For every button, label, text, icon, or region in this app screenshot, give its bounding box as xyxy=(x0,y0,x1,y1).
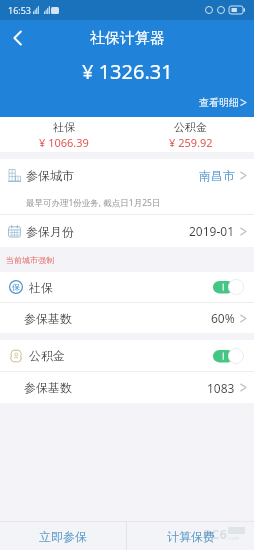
staticText: 参保基数 xyxy=(24,311,72,326)
button[interactable]: 计算保费 xyxy=(127,522,254,550)
button[interactable]: 查看明细 xyxy=(197,95,249,110)
staticText: 参保基数 xyxy=(24,380,72,395)
button[interactable]: 参保月份 xyxy=(0,215,254,247)
staticText: 立即参保 xyxy=(39,529,87,544)
staticText: 当前城市强制 xyxy=(6,255,54,265)
staticText: 2019-01 xyxy=(189,223,235,239)
staticText: 社保 xyxy=(53,120,75,134)
button[interactable]: 参保基数 xyxy=(0,372,254,403)
staticText: ¥ 1066.39 xyxy=(39,135,89,150)
staticText: 公积金 xyxy=(29,348,65,363)
staticText: 南昌市 xyxy=(199,168,235,183)
staticText: 60% xyxy=(211,310,235,326)
staticText: 计算保费 xyxy=(167,529,215,544)
staticText: 参保月份 xyxy=(26,224,74,239)
button[interactable]: 立即参保 xyxy=(0,522,126,550)
button[interactable]: 保 xyxy=(0,272,254,302)
staticText: 社保 xyxy=(29,280,53,295)
button[interactable]: Toggle xyxy=(213,279,244,295)
staticText: .com xyxy=(228,535,240,542)
staticText: 保 xyxy=(12,282,20,292)
button[interactable]: Back xyxy=(0,20,36,56)
staticText: 公积金 xyxy=(174,120,207,134)
staticText: ¥ 1326.31 xyxy=(82,58,173,85)
staticText: 参保城市 xyxy=(26,168,74,183)
button[interactable]: Toggle xyxy=(213,348,244,364)
staticText: 社保计算器 xyxy=(90,29,165,48)
staticText: 查看明细 xyxy=(199,96,239,109)
staticText: 最早可办理1份业务, 截点日1月25日 xyxy=(26,197,161,209)
button[interactable]: 参保基数 xyxy=(0,303,254,333)
button[interactable]: 社保 xyxy=(0,117,127,152)
staticText: PC6 xyxy=(203,525,227,543)
staticText: ¥ 259.92 xyxy=(169,135,213,150)
button[interactable]: 公积金 xyxy=(127,117,254,152)
button[interactable]: 参保城市 xyxy=(0,159,254,191)
staticText: 16:53 xyxy=(8,4,32,16)
staticText: 1083 xyxy=(207,380,235,396)
button[interactable]: 公积金 xyxy=(0,340,254,371)
